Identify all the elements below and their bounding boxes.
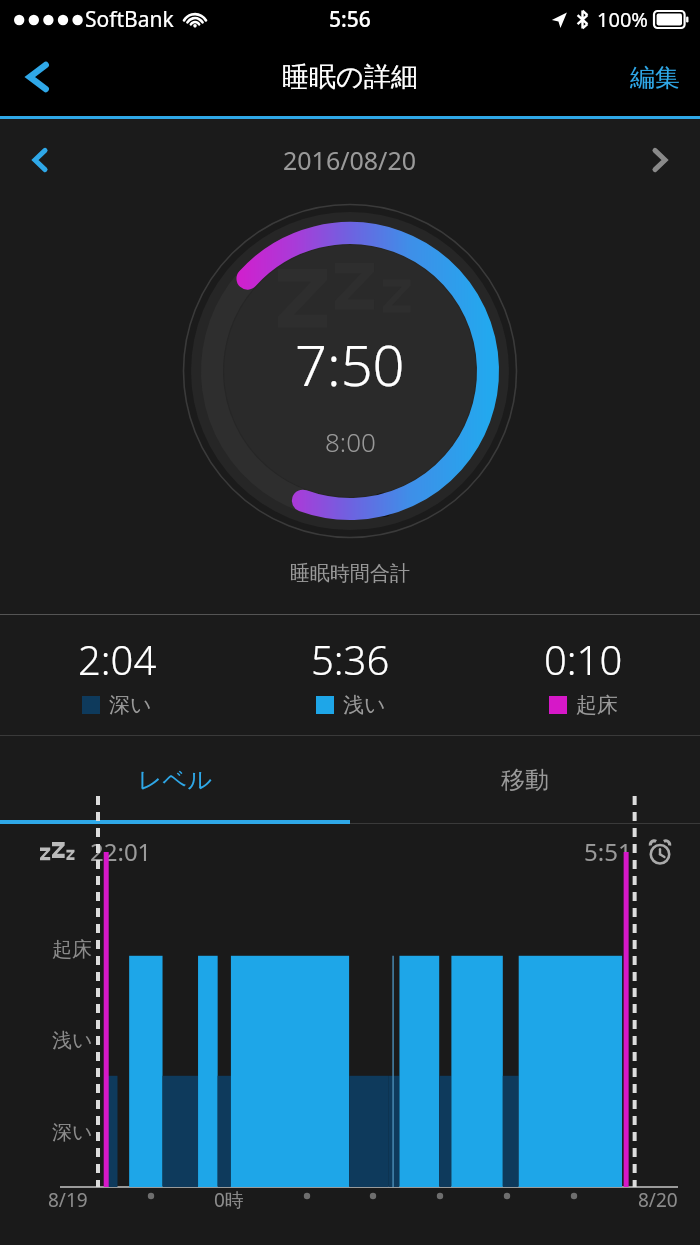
staticText: 浅い [52,1028,93,1053]
staticText: 8/19 [48,1187,88,1213]
staticText: SoftBank [85,5,174,34]
staticText: 睡眠の詳細 [282,60,418,94]
button[interactable]: 移動 [350,736,700,824]
staticText: 深い [109,692,152,718]
button[interactable]: 2:04 [0,615,234,735]
staticText: 7:50 [295,326,405,402]
button[interactable]: Back [0,38,76,116]
staticText: 2:04 [78,632,157,686]
staticText: 2016/08/20 [283,143,417,177]
staticText: 0:10 [544,632,623,686]
button[interactable]: 編集 [610,38,700,116]
button[interactable]: 5:36 [234,615,467,735]
staticText: 睡眠時間合計 [290,561,410,586]
staticText: 8/20 [638,1187,678,1213]
staticText: 起床 [576,692,618,718]
button[interactable]: Previous day [0,119,80,201]
button[interactable]: レベル [0,736,350,824]
staticText: 100% [597,6,648,33]
staticText: 0時 [214,1187,244,1213]
staticText: 起床 [52,937,92,962]
staticText: 編集 [630,62,680,93]
staticText: 深い [52,1120,93,1145]
staticText: レベル [138,765,212,795]
button[interactable]: 0:10 [467,615,700,735]
staticText: 8:00 [325,424,376,459]
staticText: 5:56 [329,5,371,34]
staticText: 5:36 [311,632,390,686]
button[interactable]: Next day [620,119,700,201]
staticText: 5:51 [584,835,632,868]
staticText: 22:01 [90,835,152,868]
staticText: 移動 [501,765,549,795]
other: Alarm [646,838,674,866]
staticText: 浅い [343,692,386,718]
